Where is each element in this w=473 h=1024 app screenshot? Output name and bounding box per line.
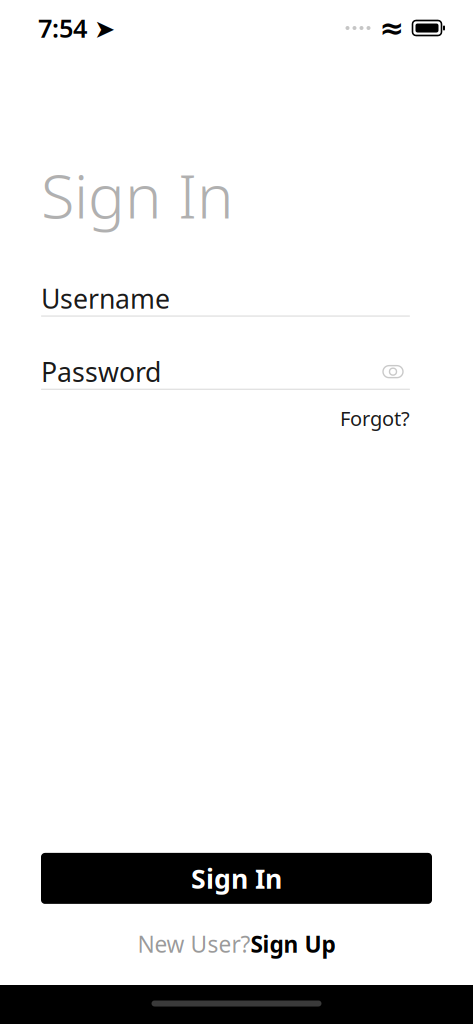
staticText: Password — [41, 354, 161, 389]
button[interactable]: Sign In — [41, 853, 432, 904]
staticText: Sign In — [191, 861, 282, 896]
staticText: 7:54 ➤ — [38, 11, 115, 45]
button[interactable]: Show password — [376, 357, 410, 387]
staticText: Sign In — [41, 154, 234, 235]
staticText: ≈ — [379, 11, 404, 45]
staticText: Sign Up — [250, 929, 335, 959]
staticText: New User? — [137, 929, 250, 959]
staticText: Username — [41, 281, 170, 316]
button[interactable]: New User? — [137, 920, 335, 968]
button[interactable]: Forgot? — [340, 405, 410, 431]
staticText: Forgot? — [340, 405, 410, 431]
